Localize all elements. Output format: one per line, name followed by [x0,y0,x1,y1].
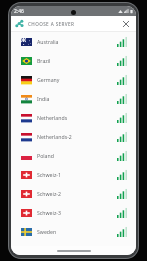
staticText: Poland [37,152,54,159]
button[interactable]: Close [119,17,132,30]
button[interactable]: Poland [11,146,136,165]
button[interactable]: Schweiz-3 [11,203,136,222]
other: App logo [15,19,24,28]
button[interactable]: Sweden [11,222,136,241]
button[interactable]: Brazil [11,51,136,70]
button[interactable]: Netherlands [11,108,136,127]
staticText: Schweiz-2 [37,190,61,197]
button[interactable]: Schweiz-2 [11,184,136,203]
staticText: Australia [37,38,59,45]
staticText: Germany [37,76,60,83]
staticText: India [37,95,50,102]
button[interactable]: Netherlands-2 [11,127,136,146]
button[interactable]: Germany [11,70,136,89]
staticText: 2:46 [14,8,24,15]
staticText: Sweden [37,228,57,235]
staticText: Netherlands [37,114,68,121]
staticText: Schweiz-1 [37,171,61,178]
staticText: Schweiz-3 [37,209,61,216]
staticText: Netherlands-2 [37,133,72,140]
staticText: CHOOSE A SERVER [28,21,75,27]
button[interactable]: India [11,89,136,108]
button[interactable]: Australia [11,32,136,51]
button[interactable]: Schweiz-1 [11,165,136,184]
staticText: Brazil [37,57,51,64]
